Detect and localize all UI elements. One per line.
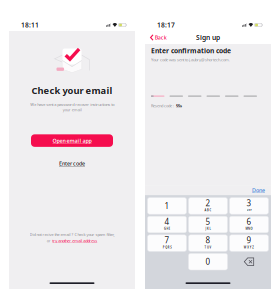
staticText: Enter code: [59, 160, 85, 167]
button[interactable]: 7: [147, 235, 186, 251]
staticText: 6: [246, 216, 251, 227]
staticText: 7: [164, 235, 169, 245]
button[interactable]: 1: [147, 198, 186, 214]
staticText: TUV: [204, 246, 211, 249]
staticText: 5: [205, 216, 210, 227]
button[interactable]: 6: [229, 216, 268, 233]
staticText: ABC: [204, 208, 211, 212]
staticText: 9: [246, 235, 251, 245]
button[interactable]: 4: [147, 216, 186, 233]
button[interactable]: Open email app: [31, 134, 113, 147]
button[interactable]: Back: [150, 34, 167, 41]
staticText: GHI: [164, 227, 170, 231]
staticText: 18:17: [157, 20, 175, 30]
staticText: 2: [205, 198, 210, 208]
staticText: 0: [205, 256, 210, 267]
button[interactable]: 9: [229, 235, 268, 251]
staticText: We have sent a password recover instruct…: [30, 102, 114, 112]
staticText: Did not recive the email ? Check your sp…: [29, 232, 114, 237]
staticText: Your code was sent to j.aubry@shortech.c…: [151, 57, 230, 62]
staticText: PQRS: [163, 246, 171, 249]
staticText: Enter confirmation code: [151, 46, 231, 55]
staticText: 4: [164, 216, 169, 227]
staticText: Done: [252, 186, 265, 194]
button[interactable]: Done: [252, 186, 265, 194]
staticText: or: [47, 238, 51, 243]
staticText: DEF: [246, 208, 251, 212]
staticText: Back: [155, 34, 167, 41]
button[interactable]: Delete: [229, 253, 268, 270]
button[interactable]: 8: [188, 235, 227, 251]
staticText: 3: [246, 198, 251, 208]
staticText: try another email address: [52, 238, 97, 243]
button[interactable]: 2: [188, 198, 227, 214]
staticText: 8: [205, 235, 210, 245]
staticText: Resend code :: [151, 103, 174, 108]
button[interactable]: Enter code: [59, 160, 85, 167]
staticText: WXYZ: [244, 246, 254, 249]
staticText: 55s: [176, 103, 182, 108]
staticText: 18:11: [21, 20, 39, 30]
staticText: MNO: [245, 227, 252, 231]
button[interactable]: try another email address: [52, 238, 97, 243]
staticText: JKL: [205, 227, 210, 231]
button[interactable]: 5: [188, 216, 227, 233]
staticText: 1: [164, 201, 169, 211]
button[interactable]: 3: [229, 198, 268, 214]
staticText: Open email app: [52, 137, 91, 144]
staticText: Sign up: [196, 33, 220, 42]
button[interactable]: 0: [188, 253, 227, 270]
staticText: Check your email: [31, 84, 112, 97]
